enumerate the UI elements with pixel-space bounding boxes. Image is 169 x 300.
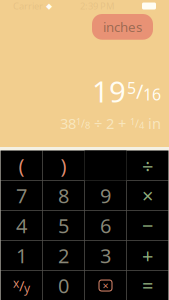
staticText: 38 <box>60 113 76 133</box>
staticText: 7 <box>16 182 27 209</box>
staticText: 2 <box>58 242 69 269</box>
staticText: / <box>135 116 139 130</box>
staticText: ) <box>60 152 66 179</box>
button[interactable]: ( <box>0 150 42 180</box>
staticText: 1 <box>130 115 135 127</box>
button[interactable]: 5 <box>42 210 84 240</box>
button[interactable] <box>84 150 126 180</box>
staticText: 4 <box>139 119 144 131</box>
staticText: 1 <box>16 242 27 269</box>
staticText: 0 <box>58 272 69 299</box>
staticText: 2:39 PM <box>80 0 114 12</box>
button[interactable]: inches <box>92 14 153 40</box>
button[interactable]: Fraction <box>0 270 42 300</box>
button[interactable]: 3 <box>84 240 126 270</box>
staticText: + <box>142 242 153 269</box>
staticText: 3 <box>100 242 111 269</box>
staticText: × <box>142 182 153 209</box>
staticText: 1 <box>76 115 81 127</box>
staticText: × <box>102 278 108 293</box>
button[interactable]: 8 <box>42 180 84 210</box>
staticText: / <box>19 276 24 295</box>
staticText: Carrier <box>13 0 43 12</box>
staticText: 5 <box>127 77 136 98</box>
staticText: 8 <box>85 119 90 131</box>
staticText: ÷ 2 + <box>90 113 130 133</box>
staticText: inches <box>103 18 142 36</box>
button[interactable]: 4 <box>0 210 42 240</box>
staticText: / <box>81 116 85 130</box>
staticText: 8 <box>58 182 69 209</box>
button[interactable]: 9 <box>84 180 126 210</box>
staticText: y <box>24 280 30 296</box>
button[interactable]: 1 <box>0 240 42 270</box>
button[interactable]: × <box>126 180 168 210</box>
staticText: 19 <box>92 72 126 111</box>
staticText: ( <box>18 152 24 179</box>
staticText: 9 <box>100 182 111 209</box>
button[interactable]: ÷ <box>126 150 168 180</box>
staticText: in <box>144 113 161 133</box>
staticText: − <box>142 212 153 239</box>
staticText: 4 <box>16 212 27 239</box>
staticText: ÷ <box>142 152 153 179</box>
staticText: 16 <box>143 84 161 105</box>
button[interactable]: 2 <box>42 240 84 270</box>
button[interactable]: ) <box>42 150 84 180</box>
button[interactable]: Delete <box>84 270 126 300</box>
button[interactable]: 6 <box>84 210 126 240</box>
button[interactable]: 0 <box>42 270 84 300</box>
staticText: = <box>142 272 153 299</box>
staticText: 5 <box>58 212 69 239</box>
button[interactable]: − <box>126 210 168 240</box>
staticText: ◆ <box>46 1 52 11</box>
button[interactable]: = <box>126 270 168 300</box>
staticText: / <box>136 78 143 104</box>
staticText: x <box>13 275 19 291</box>
button[interactable]: + <box>126 240 168 270</box>
staticText: 6 <box>100 212 111 239</box>
button[interactable]: 7 <box>0 180 42 210</box>
